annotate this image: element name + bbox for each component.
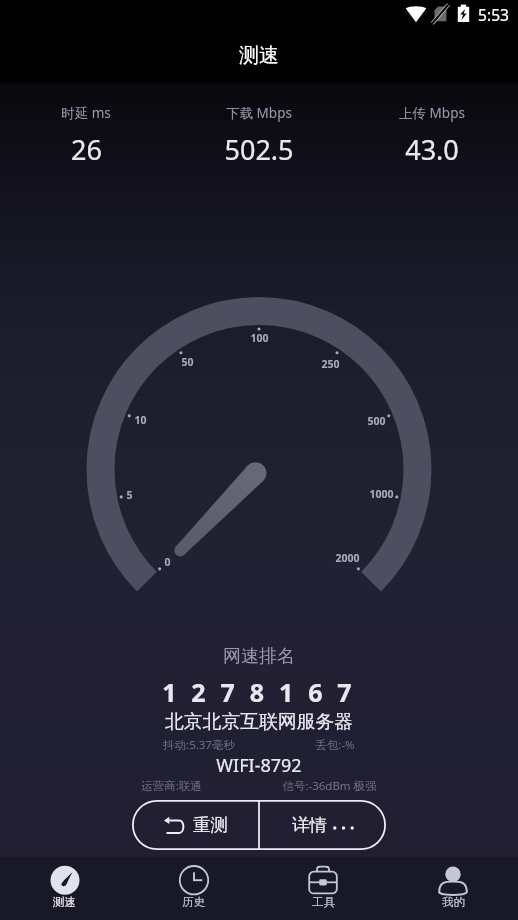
button[interactable]: 详情 — [259, 800, 386, 850]
staticText: 2000 — [335, 551, 360, 565]
staticText: 下载 Mbps — [226, 104, 292, 122]
staticText: 历史 — [182, 895, 205, 909]
staticText: 北京北京互联网服务器 — [165, 710, 353, 734]
staticText: 502.5 — [224, 131, 294, 168]
button[interactable]: 历史 — [129, 857, 258, 920]
staticText: 信号:-36dBm 极强 — [282, 778, 377, 794]
staticText: 测速 — [53, 895, 76, 909]
staticText: 测速 — [239, 43, 279, 68]
staticText: 0 — [164, 555, 171, 569]
staticText: 抖动:5.37毫秒 — [163, 737, 235, 753]
staticText: 250 — [321, 357, 340, 371]
button[interactable]: 重测 — [132, 800, 259, 850]
staticText: 网速排名 — [223, 645, 295, 668]
staticText: WIFI-8792 — [216, 753, 302, 778]
staticText: 1000 — [369, 487, 394, 501]
button[interactable]: 工具 — [258, 857, 388, 920]
button[interactable]: 测速 — [0, 857, 129, 920]
staticText: 5:53 — [478, 4, 509, 25]
staticText: 5 — [126, 488, 133, 502]
staticText: 10 — [134, 413, 147, 427]
staticText: 时延 ms — [61, 104, 111, 122]
staticText: 1 2 7 8 1 6 7 — [162, 675, 356, 705]
staticText: 我的 — [442, 895, 465, 909]
staticText: 500 — [367, 414, 386, 428]
staticText: 详情 — [292, 814, 327, 836]
staticText: 重测 — [193, 814, 228, 836]
staticText: 50 — [181, 355, 194, 369]
button[interactable]: 我的 — [388, 857, 518, 920]
staticText: 26 — [71, 131, 102, 168]
staticText: 43.0 — [405, 131, 459, 168]
staticText: 丢包:-% — [315, 737, 355, 753]
staticText: 上传 Mbps — [399, 104, 465, 122]
staticText: 100 — [250, 331, 269, 345]
staticText: 运营商:联通 — [141, 778, 202, 794]
staticText: 工具 — [312, 895, 335, 909]
